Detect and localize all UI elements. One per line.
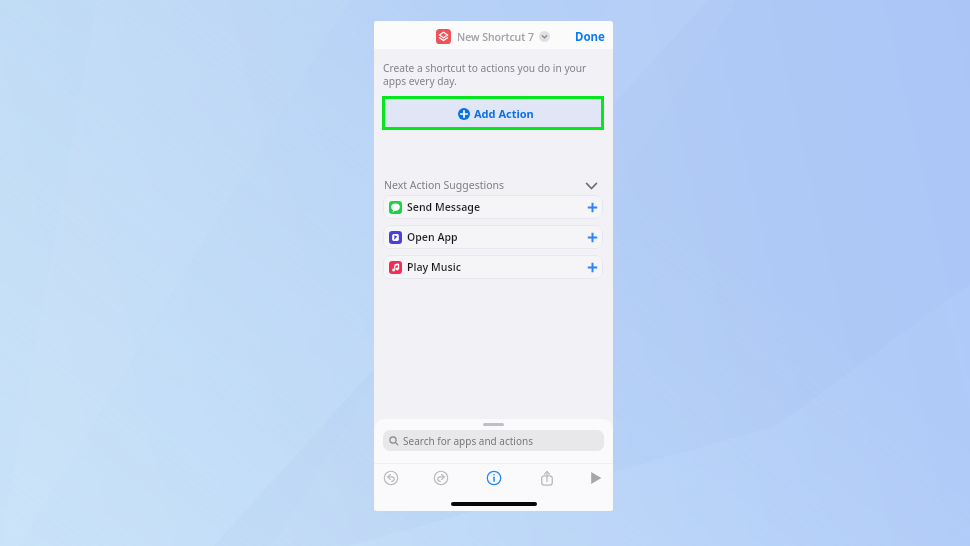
staticText: New Shortcut 7 — [457, 30, 534, 44]
button[interactable]: Send Message — [383, 195, 603, 219]
button[interactable]: Undo — [377, 464, 404, 491]
button[interactable]: Add Action — [382, 96, 604, 130]
button[interactable]: Run — [581, 464, 608, 491]
staticText: Send Message — [407, 200, 481, 214]
staticText: Done — [575, 29, 605, 45]
button[interactable]: Share — [533, 464, 560, 491]
staticText: Play Music — [407, 260, 461, 274]
staticText: Create a shortcut to actions you do in y… — [383, 61, 595, 88]
button[interactable]: Play Music — [383, 255, 603, 279]
button[interactable]: Next Action Suggestions — [374, 175, 613, 195]
button[interactable]: Done — [564, 23, 613, 51]
staticText: Add Action — [474, 106, 534, 121]
staticText: Next Action Suggestions — [384, 178, 505, 192]
button[interactable]: Open App — [383, 225, 603, 249]
button[interactable]: Search for apps and actions — [383, 430, 604, 451]
button[interactable]: Shortcut options — [539, 31, 550, 42]
button[interactable]: Info — [480, 464, 507, 491]
button[interactable]: Redo — [427, 464, 454, 491]
staticText: Search for apps and actions — [403, 434, 533, 448]
staticText: Open App — [407, 230, 458, 244]
